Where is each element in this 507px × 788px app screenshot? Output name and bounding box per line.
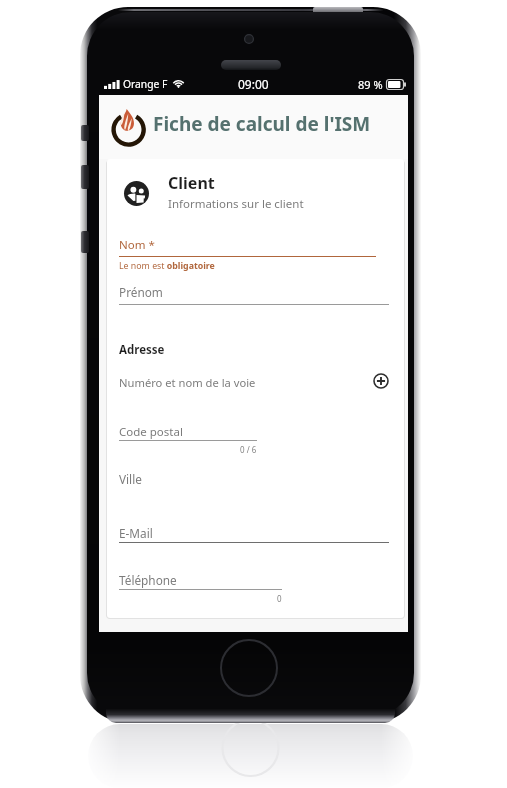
staticText: 89 % (358, 77, 383, 92)
staticText: Le nom est obligatoire (119, 260, 215, 272)
button[interactable]: Téléphone (119, 572, 399, 590)
staticText: 0 (277, 593, 282, 604)
button[interactable]: Nom * (119, 237, 399, 255)
button[interactable]: Numéro et nom de la voie (119, 375, 399, 393)
button[interactable]: E-Mail (119, 525, 399, 543)
staticText: 09:00 (238, 76, 269, 92)
staticText: Téléphone (119, 572, 177, 588)
button[interactable]: Ajouter une adresse (370, 370, 392, 392)
staticText: Ville (119, 471, 142, 487)
staticText: Code postal (119, 424, 183, 440)
staticText: 0 / 6 (240, 444, 257, 455)
staticText: Orange F (123, 77, 168, 91)
staticText: E-Mail (119, 525, 153, 541)
staticText: Fiche de calcul de l'ISM (153, 111, 371, 137)
staticText: Adresse (119, 342, 165, 358)
staticText: Numéro et nom de la voie (119, 375, 256, 390)
staticText: Informations sur le client (168, 196, 304, 212)
staticText: Client (168, 172, 215, 194)
staticText: Prénom (119, 284, 163, 300)
button[interactable]: Prénom (119, 284, 399, 302)
button[interactable]: Fiche de calcul de l'ISM (99, 95, 408, 159)
button[interactable]: Ville (119, 471, 399, 489)
button[interactable]: Code postal (119, 424, 399, 442)
button[interactable]: Adresse (119, 342, 404, 358)
staticText: Nom * (119, 237, 155, 253)
